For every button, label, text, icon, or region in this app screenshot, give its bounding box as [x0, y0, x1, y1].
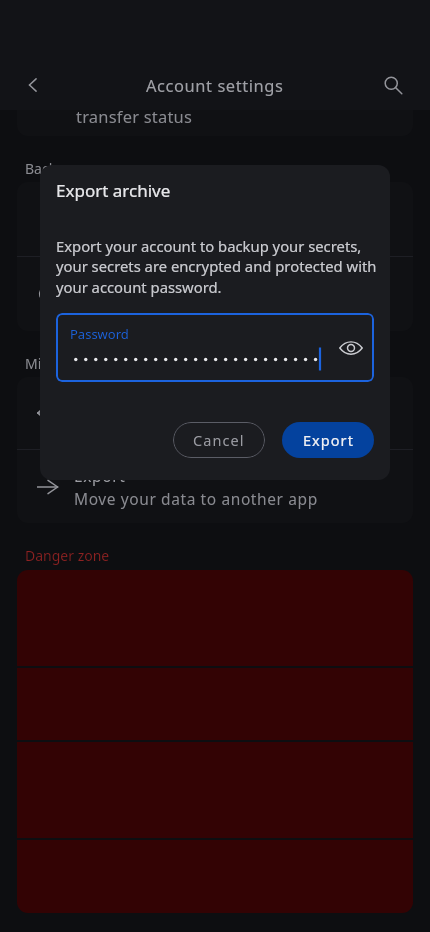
staticText: Account settings — [146, 74, 284, 96]
staticText: Cancel — [193, 430, 245, 450]
staticText: Create backup — [74, 197, 187, 218]
button[interactable]: Back — [12, 64, 54, 106]
button[interactable]: Export — [282, 422, 374, 458]
staticText: Restore backup — [74, 272, 196, 293]
staticText: Migration — [25, 354, 90, 373]
staticText: Export — [303, 430, 354, 450]
button[interactable]: Search — [372, 64, 414, 106]
button[interactable] — [17, 110, 413, 136]
staticText: Bring your data from another app — [74, 414, 340, 435]
staticText: Export your account to backup your secre… — [56, 236, 378, 298]
staticText: transfer status — [76, 105, 193, 127]
staticText: Password — [70, 325, 129, 343]
staticText: Export archive — [56, 179, 171, 202]
staticText: Move your data to another app — [74, 488, 318, 509]
button[interactable]: Cancel — [173, 422, 265, 458]
button[interactable]: Show password — [334, 331, 368, 365]
button[interactable]: Restore backup — [17, 257, 413, 331]
staticText: Danger zone — [25, 546, 110, 565]
button[interactable]: Password — [56, 313, 374, 382]
button[interactable]: Import — [17, 377, 413, 449]
button[interactable]: Create backup — [17, 182, 413, 256]
staticText: Export — [74, 465, 126, 486]
button[interactable]: Export — [17, 450, 413, 523]
staticText: Backup — [25, 159, 74, 178]
staticText: Recover secrets from a backup file — [74, 295, 344, 316]
